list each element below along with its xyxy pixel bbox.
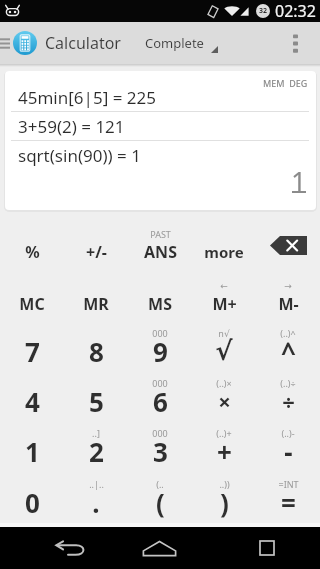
staticText: sqrt(sin(90)) = 1 — [18, 144, 141, 167]
staticText: 32 — [259, 6, 268, 16]
button[interactable]: Navigation menu — [0, 22, 13, 64]
button[interactable]: (..)^ — [256, 320, 320, 370]
button[interactable]: 000 — [128, 370, 192, 420]
staticText: 3+59(2) = 121 — [18, 115, 125, 138]
staticText: 3 — [153, 434, 168, 469]
button[interactable]: sqrt(sin(90)) = 1 — [5, 141, 316, 170]
staticText: ) — [220, 485, 229, 520]
button[interactable]: 0 — [0, 471, 64, 521]
staticText: ..|.. — [89, 478, 104, 490]
button[interactable]: Home — [106, 527, 213, 569]
button[interactable]: 7 — [0, 320, 64, 370]
staticText: =INT — [278, 478, 299, 490]
staticText: (..)+ — [216, 427, 232, 439]
button[interactable]: Complete — [145, 22, 218, 64]
button[interactable]: (..)+ — [192, 420, 256, 470]
staticText: 5 — [89, 384, 104, 419]
staticText: 0 — [25, 485, 40, 520]
button[interactable]: MC — [0, 272, 64, 323]
button[interactable]: ← — [192, 272, 256, 323]
staticText: 1 — [291, 163, 307, 197]
button[interactable]: 45min[6|5] = 225 — [5, 83, 316, 112]
staticText: MEM DEG — [263, 77, 308, 89]
button[interactable]: 000 — [128, 320, 192, 370]
button[interactable]: Recent apps — [213, 527, 320, 569]
staticText: 02:32 — [275, 0, 316, 22]
button[interactable]: ..)) — [192, 471, 256, 521]
staticText: 9 — [153, 334, 168, 369]
staticText: ^ — [281, 334, 296, 369]
staticText: ( — [156, 485, 165, 520]
staticText: MC — [19, 293, 45, 315]
staticText: 000 — [152, 427, 168, 439]
button[interactable]: (.. — [128, 471, 192, 521]
button[interactable]: More options — [271, 22, 320, 64]
staticText: 2 — [89, 434, 104, 469]
button[interactable]: 3+59(2) = 121 — [5, 112, 316, 141]
staticText: × — [218, 386, 231, 416]
button[interactable]: MS — [128, 272, 192, 323]
staticText: 7 — [25, 334, 40, 369]
staticText: 8 — [89, 334, 104, 369]
staticText: + — [217, 434, 232, 469]
button[interactable]: 8 — [64, 320, 128, 370]
staticText: (..)^ — [280, 327, 296, 339]
staticText: = — [281, 485, 296, 520]
staticText: (.. — [156, 478, 164, 490]
staticText: +/- — [86, 241, 107, 263]
button[interactable]: more — [192, 219, 256, 272]
button[interactable]: n√ — [192, 320, 256, 370]
staticText: Complete — [145, 34, 204, 52]
button[interactable]: (..)÷ — [256, 370, 320, 420]
staticText: n√ — [218, 327, 230, 339]
button[interactable]: Backspace — [256, 219, 320, 272]
button[interactable]: 1 — [0, 420, 64, 470]
staticText: M+ — [212, 293, 237, 315]
staticText: 000 — [152, 327, 168, 339]
staticText: → — [284, 281, 292, 291]
staticText: 45min[6|5] = 225 — [18, 86, 156, 109]
staticText: - — [284, 434, 293, 469]
staticText: 4 — [25, 384, 40, 419]
button[interactable]: (..)- — [256, 420, 320, 470]
button[interactable]: MR — [64, 272, 128, 323]
button[interactable]: → — [256, 272, 320, 323]
staticText: M- — [278, 293, 299, 315]
button[interactable]: ..] — [64, 420, 128, 470]
button[interactable]: Back — [0, 527, 106, 569]
staticText: % — [25, 241, 40, 263]
staticText: (..)÷ — [280, 377, 296, 389]
button[interactable]: 000 — [128, 420, 192, 470]
staticText: √ — [215, 336, 233, 366]
staticText: ANS — [144, 241, 177, 263]
staticText: . — [92, 485, 100, 520]
button[interactable]: (..)× — [192, 370, 256, 420]
button[interactable]: % — [0, 219, 64, 272]
button[interactable]: =INT — [256, 471, 320, 521]
button[interactable]: 4 — [0, 370, 64, 420]
staticText: ..] — [92, 427, 100, 439]
staticText: Calculator — [45, 32, 121, 54]
staticText: 6 — [153, 384, 168, 419]
button[interactable]: +/- — [64, 219, 128, 272]
staticText: ÷ — [282, 386, 295, 416]
button[interactable]: PAST — [128, 219, 192, 272]
staticText: MR — [83, 293, 109, 315]
button[interactable]: ..|.. — [64, 471, 128, 521]
staticText: 1 — [25, 434, 40, 469]
staticText: ← — [220, 281, 228, 291]
staticText: 000 — [152, 377, 168, 389]
staticText: more — [204, 242, 244, 262]
staticText: (..)× — [216, 377, 232, 389]
button[interactable]: 5 — [64, 370, 128, 420]
staticText: PAST — [150, 228, 171, 240]
staticText: ..)) — [219, 478, 230, 490]
staticText: MS — [148, 293, 172, 315]
staticText: (..)- — [281, 427, 295, 439]
